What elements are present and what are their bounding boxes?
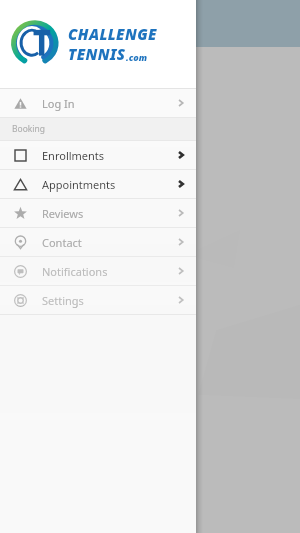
staticText: Appointments [42, 177, 116, 192]
button[interactable]: Notifications [0, 257, 196, 285]
staticText: TENNIS [68, 44, 126, 64]
staticText: Reviews [42, 206, 84, 221]
button[interactable]: Appointments [0, 170, 196, 198]
staticText: Settings [42, 293, 84, 308]
button[interactable]: Reviews [0, 199, 196, 227]
staticText: Notifications [42, 264, 108, 279]
staticText: Booking [12, 123, 46, 135]
staticText: Log In [42, 96, 75, 111]
button[interactable]: Settings [0, 286, 196, 314]
button[interactable]: Log In [0, 89, 196, 117]
button[interactable]: Enrollments [0, 141, 196, 169]
staticText: CHALLENGE [68, 24, 157, 44]
staticText: Enrollments [42, 148, 105, 163]
button[interactable]: Contact [0, 228, 196, 256]
staticText: .com [126, 51, 148, 63]
staticText: Contact [42, 235, 82, 250]
